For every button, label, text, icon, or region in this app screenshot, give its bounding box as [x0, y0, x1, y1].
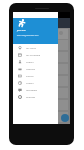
- button[interactable]: Clients: [13, 58, 58, 65]
- staticText: My Schedule: [26, 53, 41, 56]
- staticText: My Visits: [26, 46, 36, 49]
- staticText: John Doe: [17, 29, 26, 32]
- staticText: Payroll: [26, 74, 34, 77]
- button[interactable]: Timers: [13, 79, 58, 86]
- staticText: Vehicles: [26, 67, 36, 70]
- staticText: john.doe@example.com: [17, 34, 39, 37]
- staticText: Settings: [26, 95, 36, 98]
- button[interactable]: My Schedule: [13, 51, 58, 58]
- button[interactable]: Messages: [13, 86, 58, 93]
- button[interactable]: My Visits: [13, 44, 58, 51]
- button[interactable]: Vehicles: [13, 65, 58, 72]
- button[interactable]: Payroll: [13, 72, 58, 79]
- button[interactable]: Add: [61, 114, 69, 122]
- button[interactable]: Settings: [13, 93, 58, 100]
- staticText: Messages: [26, 88, 38, 91]
- staticText: Timers: [26, 81, 34, 84]
- staticText: Clients: [26, 60, 34, 63]
